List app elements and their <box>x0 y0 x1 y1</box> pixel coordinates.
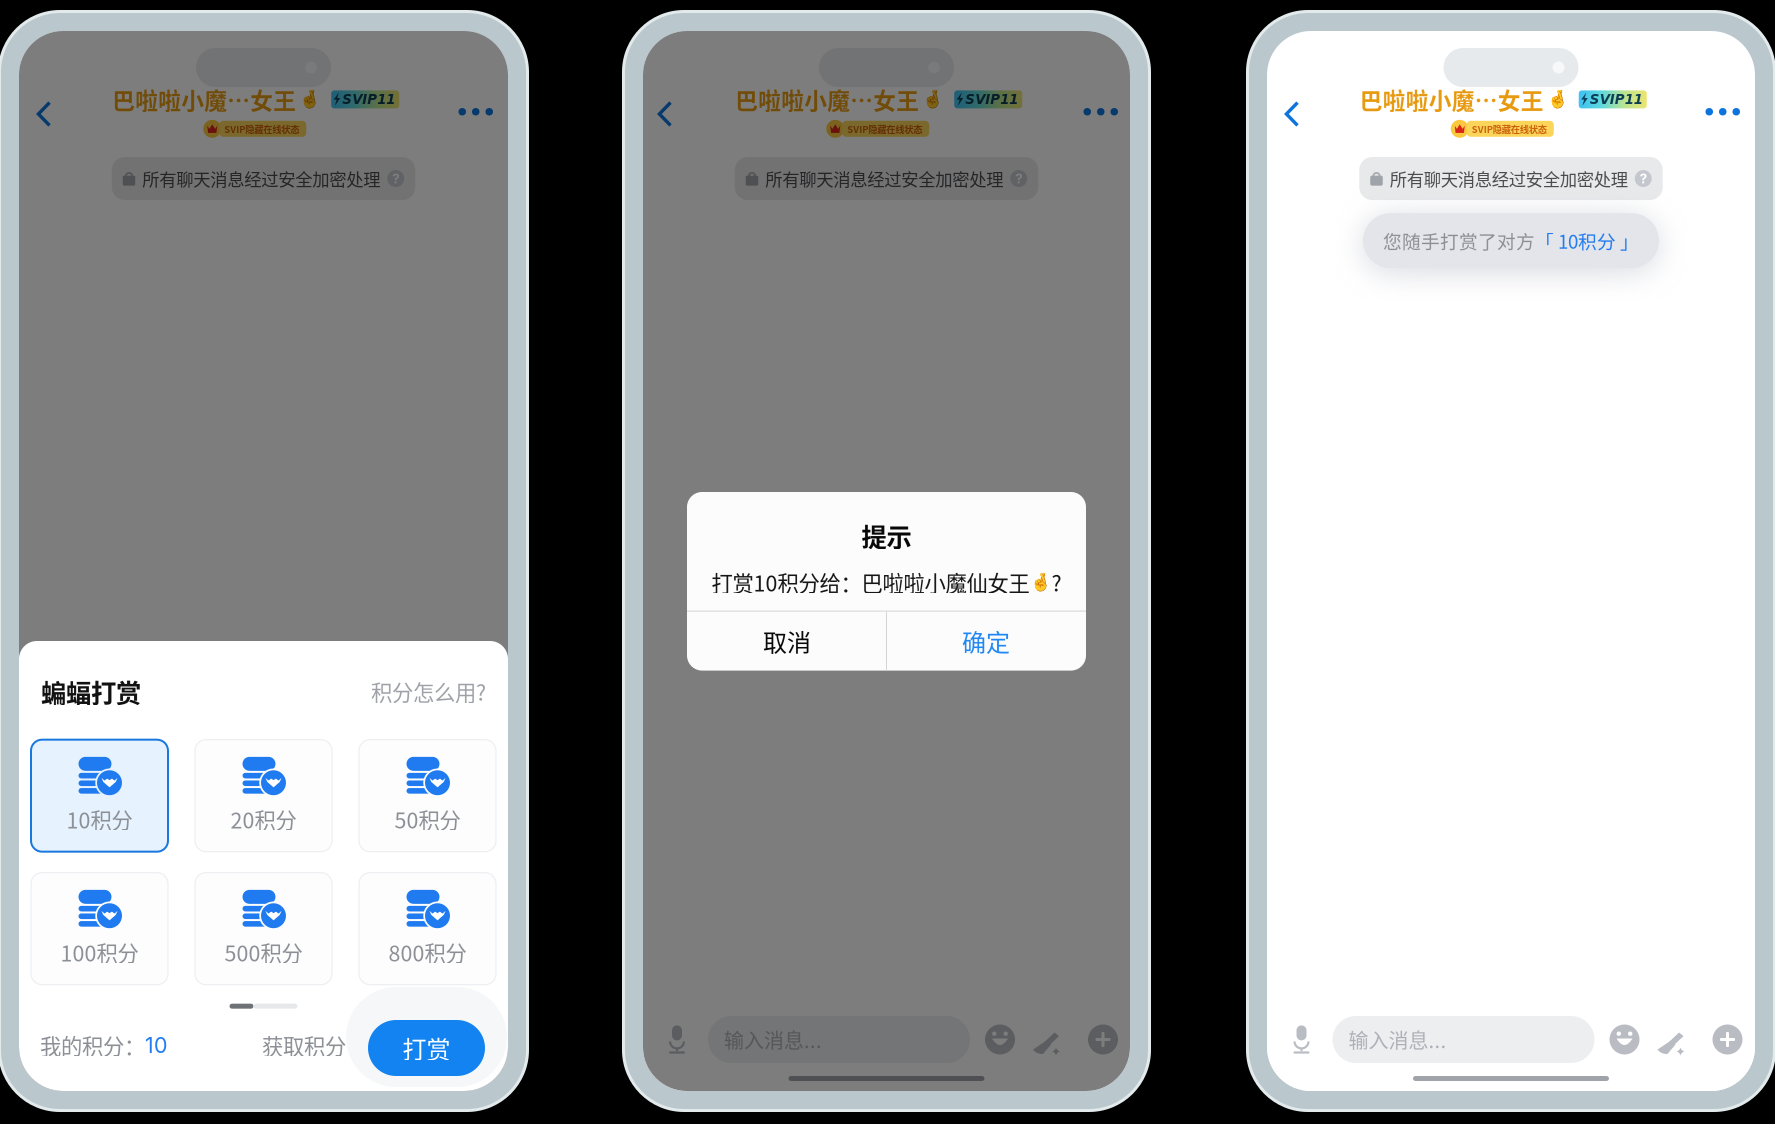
staticText: 取消 <box>763 624 811 658</box>
staticText: 巴啦啦小魔…女王 <box>112 83 296 116</box>
staticText: 🤞 <box>299 89 321 110</box>
button[interactable]: 确定 <box>887 612 1085 671</box>
button[interactable]: 输入消息... <box>1332 1016 1594 1063</box>
button[interactable]: 100积分 <box>31 873 168 985</box>
button[interactable]: 获取积分 <box>262 1030 346 1061</box>
staticText: 50积分 <box>394 804 460 835</box>
staticText: 「 10积分 」 <box>1535 227 1639 254</box>
button[interactable]: More options <box>1711 1021 1743 1057</box>
button[interactable]: 500积分 <box>195 873 332 985</box>
staticText: SVIP隐藏在线状态 <box>847 122 922 136</box>
staticText: SVIP隐藏在线状态 <box>1472 122 1547 136</box>
staticText: SVIP隐藏在线状态 <box>224 122 299 136</box>
button[interactable]: 输入消息... <box>708 1016 970 1063</box>
button[interactable]: Voice message <box>662 1021 692 1057</box>
staticText: 输入消息... <box>724 1025 822 1054</box>
button[interactable]: More <box>446 83 508 125</box>
staticText: SVIP11 <box>342 92 395 107</box>
button[interactable]: 10积分 <box>31 740 168 852</box>
staticText: 蝙蝠打赏 <box>41 673 141 710</box>
staticText: 巴啦啦小魔…女王 <box>735 83 919 116</box>
staticText: 所有聊天消息经过安全加密处理 <box>1390 166 1628 191</box>
button[interactable]: 800积分 <box>359 873 496 985</box>
staticText: 打赏10积分给：巴啦啦小魔仙女王 <box>711 567 1029 598</box>
button[interactable]: Back <box>19 83 65 139</box>
button[interactable]: Clear chat <box>1654 1021 1686 1057</box>
staticText: ? <box>1015 170 1022 187</box>
staticText: 输入消息... <box>1348 1025 1446 1054</box>
button[interactable]: More options <box>1087 1021 1119 1057</box>
staticText: SVIP11 <box>965 92 1018 107</box>
staticText: 20积分 <box>230 804 296 835</box>
button[interactable]: 积分怎么用? <box>371 676 486 707</box>
button[interactable]: Back <box>640 83 686 139</box>
button[interactable]: 打赏 <box>368 1020 485 1076</box>
staticText: 您随手打赏了对方 <box>1383 227 1535 254</box>
staticText: 确定 <box>962 624 1010 658</box>
staticText: 800积分 <box>388 937 466 968</box>
staticText: 获取积分 <box>262 1030 346 1061</box>
staticText: 10积分 <box>66 804 132 835</box>
staticText: 500积分 <box>224 937 302 968</box>
button[interactable]: Back <box>1267 83 1313 139</box>
button[interactable]: Emoji <box>984 1021 1016 1057</box>
staticText: 我的积分： <box>40 1030 145 1061</box>
button[interactable]: More <box>1071 83 1133 125</box>
button[interactable]: 20积分 <box>195 740 332 852</box>
staticText: ? <box>1640 170 1647 187</box>
button[interactable]: More <box>1693 83 1755 125</box>
staticText: 积分怎么用? <box>371 676 486 707</box>
staticText: 打赏 <box>402 1031 450 1065</box>
button[interactable]: 取消 <box>688 612 886 671</box>
staticText: 提示 <box>861 517 911 554</box>
staticText: 100积分 <box>60 937 138 968</box>
staticText: SVIP11 <box>1590 92 1643 107</box>
button[interactable]: Voice message <box>1286 1021 1316 1057</box>
staticText: 🤞 <box>1029 572 1051 592</box>
staticText: 🤞 <box>1547 89 1569 110</box>
staticText: ? <box>392 170 399 187</box>
staticText: 巴啦啦小魔…女王 <box>1360 83 1544 116</box>
button[interactable]: 50积分 <box>359 740 496 852</box>
staticText: 所有聊天消息经过安全加密处理 <box>142 166 380 191</box>
button[interactable]: Emoji <box>1608 1021 1640 1057</box>
button[interactable]: Clear chat <box>1030 1021 1062 1057</box>
staticText: 10 <box>145 1032 167 1058</box>
staticText: ? <box>1051 567 1061 598</box>
staticText: 🤞 <box>922 89 944 110</box>
staticText: 所有聊天消息经过安全加密处理 <box>765 166 1003 191</box>
